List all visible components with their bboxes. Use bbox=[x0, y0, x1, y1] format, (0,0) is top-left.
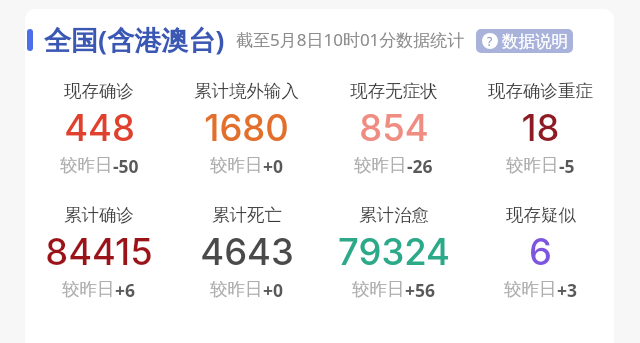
staticText: ? bbox=[487, 33, 493, 49]
button[interactable]: 现存无症状 bbox=[320, 9, 467, 53]
staticText: 6 bbox=[529, 230, 552, 274]
staticText: +3 bbox=[557, 278, 578, 302]
staticText: 18 bbox=[521, 106, 560, 150]
staticText: +0 bbox=[263, 278, 284, 302]
staticText: 累计死亡 bbox=[212, 204, 282, 226]
staticText: 较昨日 bbox=[210, 154, 263, 176]
button[interactable]: 现存确诊 bbox=[25, 9, 173, 53]
staticText: -5 bbox=[559, 154, 575, 178]
staticText: 累计治愈 bbox=[359, 204, 429, 226]
button[interactable]: 累计境外输入 bbox=[173, 9, 320, 53]
staticText: 全国(含港澳台) bbox=[44, 21, 225, 58]
button[interactable]: Data description help bbox=[476, 29, 573, 53]
staticText: +0 bbox=[263, 154, 284, 178]
staticText: 现存确诊 bbox=[64, 80, 134, 102]
staticText: 854 bbox=[359, 106, 429, 150]
button[interactable]: 累计确诊 bbox=[25, 9, 173, 53]
staticText: 现存疑似 bbox=[506, 204, 576, 226]
staticText: 较昨日 bbox=[62, 278, 115, 300]
staticText: -50 bbox=[113, 154, 139, 178]
staticText: 79324 bbox=[338, 230, 450, 274]
staticText: 4643 bbox=[200, 230, 294, 274]
staticText: 较昨日 bbox=[60, 154, 113, 176]
staticText: +6 bbox=[115, 278, 136, 302]
button[interactable]: 现存确诊重症 bbox=[467, 9, 614, 53]
button[interactable]: 现存疑似 bbox=[467, 9, 614, 53]
other: Data description help bbox=[482, 33, 498, 49]
staticText: 较昨日 bbox=[352, 278, 405, 300]
staticText: 截至5月8日10时01分数据统计 bbox=[236, 28, 465, 51]
staticText: 较昨日 bbox=[210, 278, 263, 300]
staticText: 较昨日 bbox=[504, 278, 557, 300]
button[interactable]: 累计治愈 bbox=[320, 9, 467, 53]
staticText: 现存确诊重症 bbox=[488, 80, 593, 102]
staticText: 累计境外输入 bbox=[194, 80, 299, 102]
staticText: 1680 bbox=[204, 106, 289, 150]
staticText: 448 bbox=[64, 106, 135, 150]
staticText: 累计确诊 bbox=[64, 204, 134, 226]
staticText: +56 bbox=[405, 278, 436, 302]
staticText: 现存无症状 bbox=[350, 80, 438, 102]
staticText: 数据说明 bbox=[502, 31, 568, 52]
staticText: 较昨日 bbox=[354, 154, 407, 176]
button[interactable]: 累计死亡 bbox=[173, 9, 320, 53]
staticText: -26 bbox=[407, 154, 433, 178]
staticText: 84415 bbox=[45, 230, 153, 274]
staticText: 较昨日 bbox=[506, 154, 559, 176]
